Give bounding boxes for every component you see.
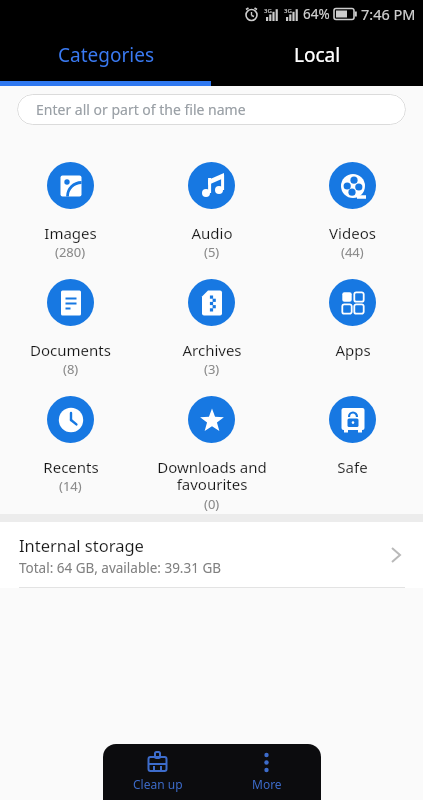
staticText: Local <box>294 42 341 68</box>
staticText: Videos <box>329 223 376 243</box>
button[interactable]: Categories <box>0 28 211 81</box>
staticText: Recents <box>43 457 99 477</box>
staticText: Safe <box>337 457 368 477</box>
staticText: 3G <box>284 7 292 15</box>
staticText: (5) <box>204 243 220 261</box>
button[interactable]: Enter all or part of the file name <box>17 94 406 125</box>
staticText: Downloads and favourites <box>157 457 267 495</box>
button[interactable]: Local <box>211 28 423 81</box>
staticText: Images <box>44 223 97 243</box>
staticText: Internal storage <box>19 534 144 556</box>
staticText: (14) <box>59 477 82 495</box>
staticText: (8) <box>63 360 79 378</box>
staticText: Enter all or part of the file name <box>36 100 246 119</box>
staticText: 64% <box>303 5 330 23</box>
staticText: 3G <box>264 7 272 15</box>
staticText: (44) <box>341 243 364 261</box>
button[interactable]: Images <box>0 162 141 261</box>
staticText: Total: 64 GB, available: 39.31 GB <box>19 559 222 577</box>
button[interactable]: More <box>212 744 321 800</box>
button[interactable]: Archives <box>141 279 282 378</box>
staticText: Categories <box>58 42 154 68</box>
button[interactable]: Apps <box>282 279 423 360</box>
button[interactable]: Audio <box>141 162 282 261</box>
staticText: (3) <box>204 360 220 378</box>
button[interactable]: Documents <box>0 279 141 378</box>
staticText: (0) <box>204 495 220 513</box>
button[interactable]: Safe <box>282 396 423 477</box>
staticText: (280) <box>55 243 86 261</box>
staticText: Documents <box>30 340 111 360</box>
staticText: Clean up <box>133 776 183 792</box>
button[interactable]: Internal storage <box>0 522 423 588</box>
staticText: 7:46 PM <box>361 4 416 24</box>
button[interactable]: Videos <box>282 162 423 261</box>
staticText: Apps <box>335 340 371 360</box>
button[interactable]: Clean up <box>103 744 212 800</box>
button[interactable]: Recents <box>0 396 141 495</box>
staticText: Archives <box>182 340 242 360</box>
staticText: Audio <box>191 223 233 243</box>
button[interactable]: Downloads and favourites <box>141 396 282 513</box>
staticText: More <box>252 776 282 792</box>
